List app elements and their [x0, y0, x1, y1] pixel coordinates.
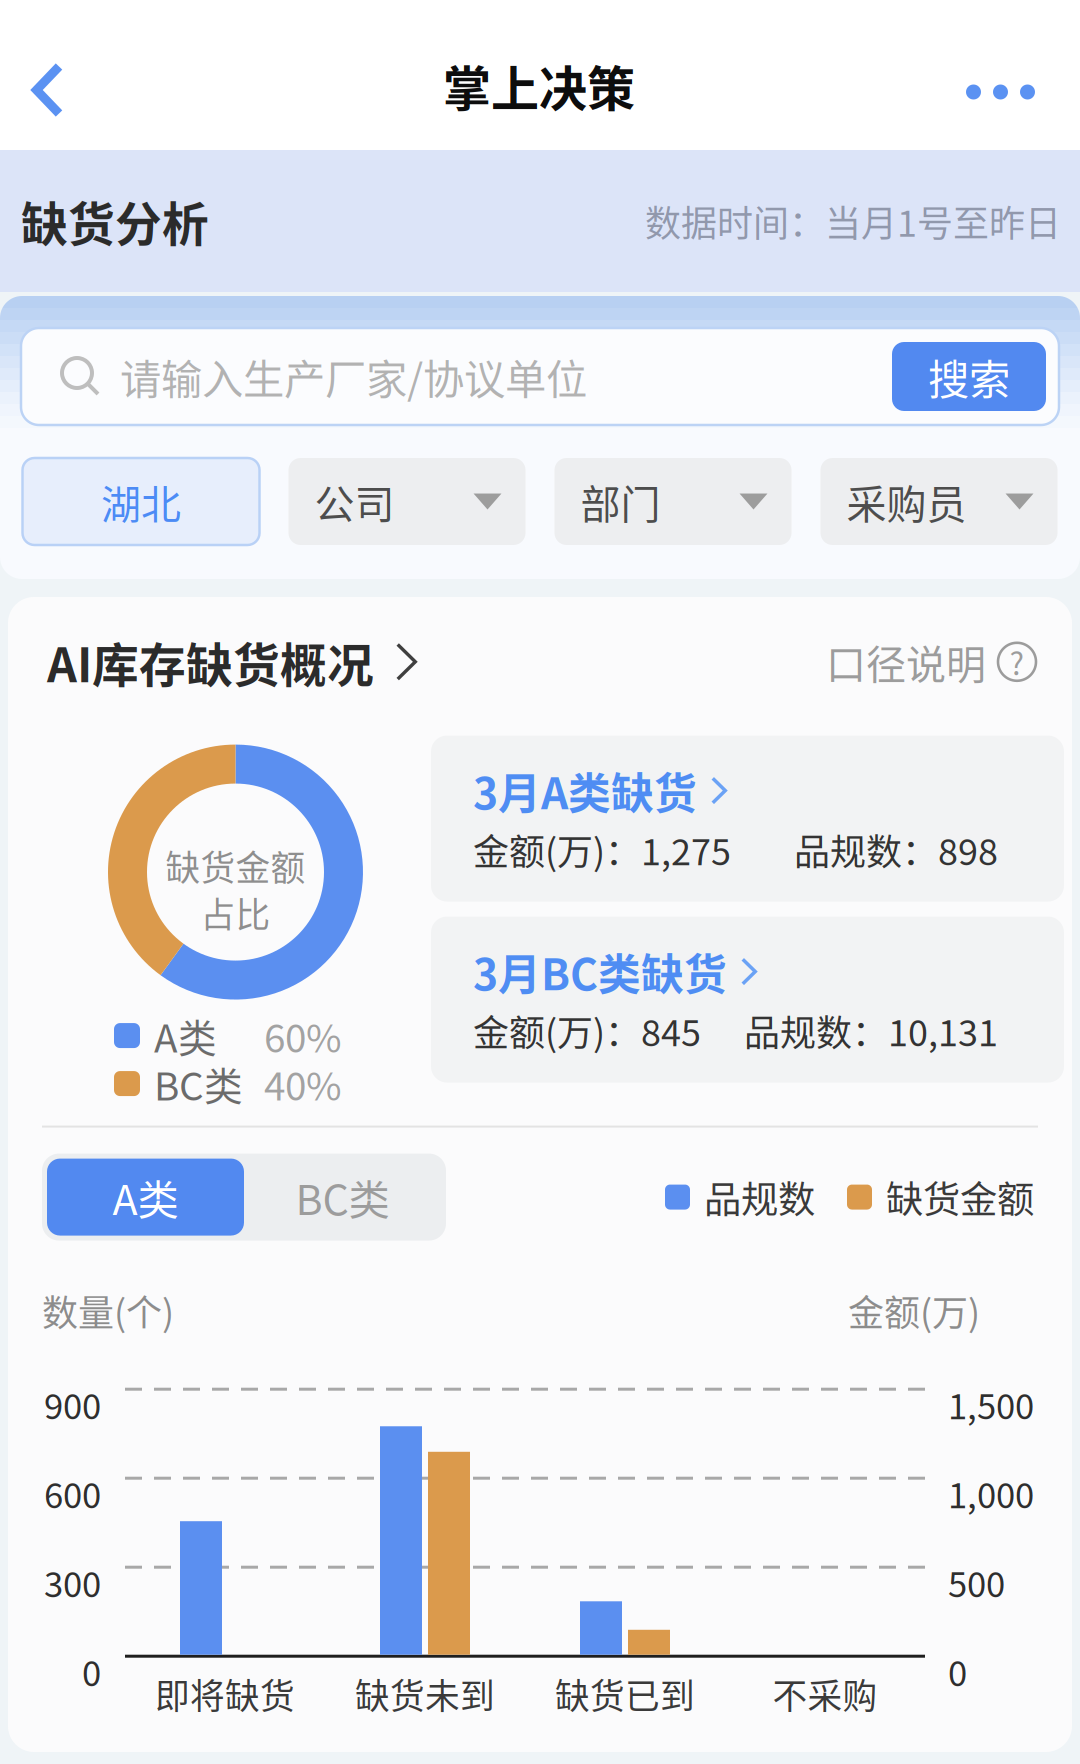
staticText: 品规数：898 [794, 823, 998, 876]
staticText: BC类 [154, 1056, 243, 1112]
staticText: 缺货未到 [355, 1669, 495, 1719]
button[interactable]: 3月A类缺货 [431, 736, 1064, 902]
staticText: 缺货金额 [886, 1170, 1034, 1224]
staticText: 缺货金额 [165, 840, 305, 891]
staticText: 部门 [580, 472, 660, 530]
staticText: 占比 [200, 887, 270, 938]
staticText: 口径说明 [826, 633, 986, 691]
staticText: 掌上决策 [443, 50, 635, 120]
staticText: 数量(个) [42, 1285, 174, 1337]
staticText: 公司 [314, 472, 394, 530]
staticText: 搜索 [928, 347, 1010, 406]
staticText: 1,000 [948, 1468, 1034, 1518]
staticText: 60% [264, 1008, 342, 1064]
button[interactable]: More options [936, 20, 1080, 99]
button[interactable]: BC类 [244, 1159, 441, 1236]
staticText: 即将缺货 [155, 1669, 295, 1719]
staticText: 数据时间：当月1号至昨日 [645, 195, 1061, 247]
staticText: BC类 [295, 1167, 389, 1227]
staticText: 300 [44, 1557, 101, 1607]
staticText: 900 [44, 1379, 101, 1429]
button[interactable]: Back [0, 2, 88, 118]
staticText: 湖北 [101, 472, 181, 530]
button[interactable]: 湖北 [22, 458, 259, 545]
staticText: 品规数：10,131 [744, 1004, 998, 1057]
button[interactable]: 部门 [554, 458, 791, 545]
staticText: 金额(万) [848, 1285, 980, 1337]
staticText: AI库存缺货概况 [47, 628, 374, 696]
staticText: 0 [82, 1646, 101, 1696]
staticText: 采购员 [846, 472, 966, 530]
button[interactable]: 口径说明 [826, 633, 1036, 691]
staticText: 请输入生产厂家/协议单位 [120, 347, 587, 406]
button[interactable]: 3月BC类缺货 [431, 917, 1064, 1083]
staticText: 1,500 [948, 1379, 1034, 1429]
staticText: 600 [44, 1468, 101, 1518]
staticText: 3月BC类缺货 [473, 941, 727, 1002]
button[interactable]: 采购员 [820, 458, 1057, 545]
button[interactable]: 公司 [288, 458, 525, 545]
staticText: ? [1009, 640, 1024, 684]
staticText: 不采购 [772, 1669, 877, 1719]
staticText: 40% [264, 1056, 342, 1112]
staticText: 0 [948, 1646, 967, 1696]
button[interactable]: 搜索 [892, 342, 1046, 411]
staticText: 3月A类缺货 [473, 760, 697, 821]
staticText: 缺货已到 [555, 1669, 695, 1719]
staticText: 金额(万)：1,275 [473, 823, 731, 876]
staticText: 500 [948, 1557, 1005, 1607]
staticText: 缺货分析 [21, 187, 209, 255]
staticText: 金额(万)：845 [473, 1004, 701, 1057]
button[interactable]: AI库存缺货概况 [47, 628, 417, 696]
staticText: A类 [112, 1167, 178, 1227]
staticText: A类 [154, 1008, 217, 1064]
staticText: 品规数 [704, 1170, 815, 1224]
button[interactable]: A类 [47, 1159, 244, 1236]
